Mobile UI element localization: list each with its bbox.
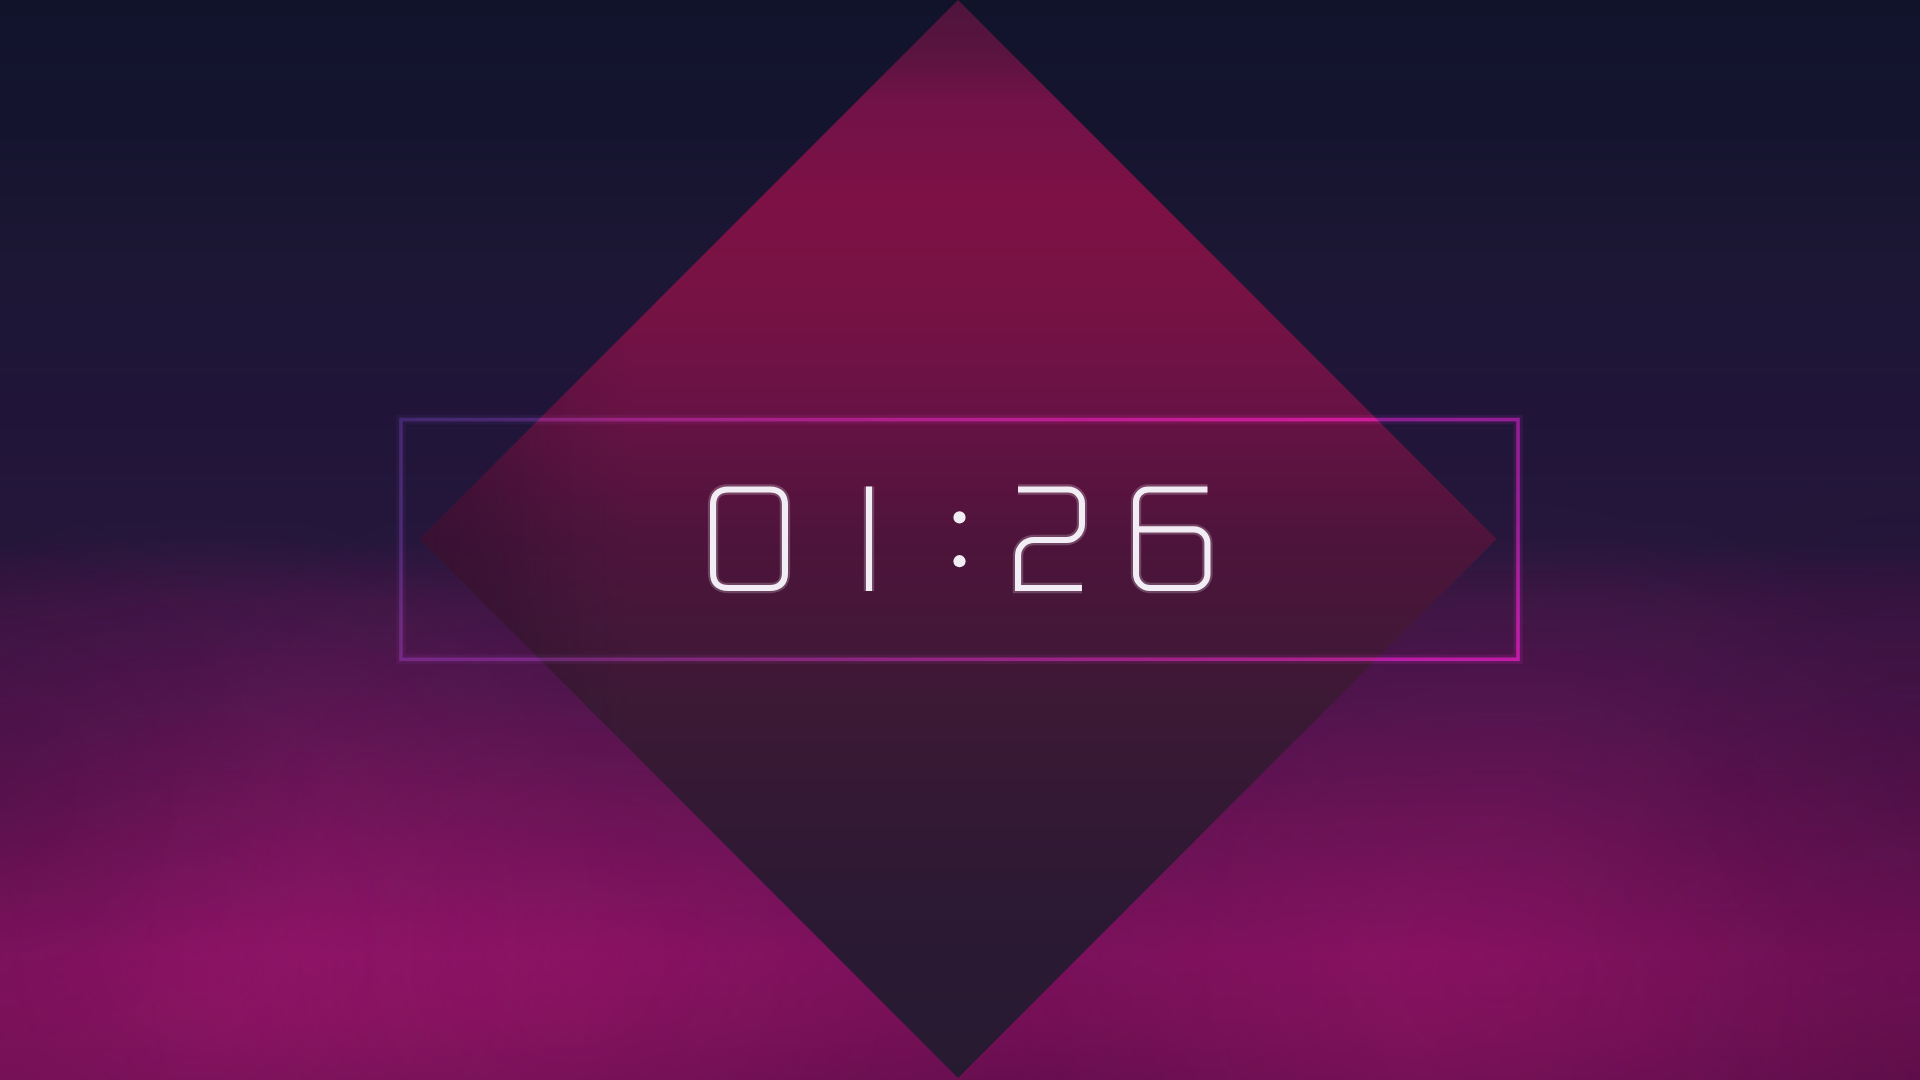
button[interactable]: Countdown timer 01:26, tap to pause [402,420,1519,660]
